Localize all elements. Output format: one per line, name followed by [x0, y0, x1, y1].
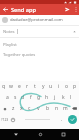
staticText: e: [18, 83, 21, 90]
button[interactable]: f: [27, 92, 35, 103]
staticText: y: [42, 83, 45, 90]
staticText: u: [49, 83, 53, 90]
button[interactable]: c: [25, 103, 34, 114]
button[interactable]: Space: [17, 114, 58, 125]
button[interactable]: p: [71, 81, 79, 92]
staticText: h: [45, 94, 49, 101]
staticText: t: [34, 83, 36, 90]
button[interactable]: Shift: [0, 103, 9, 114]
staticText: c: [28, 105, 31, 112]
button[interactable]: .: [58, 114, 65, 125]
button[interactable]: Enter: [65, 114, 79, 125]
staticText: f: [30, 94, 32, 101]
button[interactable]: m: [61, 103, 70, 114]
button[interactable]: Back: [0, 4, 11, 15]
button[interactable]: Emoji: [9, 114, 17, 125]
button[interactable]: q: [0, 81, 7, 92]
button[interactable]: Send: [62, 4, 72, 15]
staticText: .: [61, 116, 63, 123]
button[interactable]: w: [7, 81, 15, 92]
button[interactable]: Home: [33, 129, 47, 140]
button[interactable]: s: [11, 92, 19, 103]
staticText: m: [63, 105, 68, 112]
staticText: p: [73, 83, 77, 90]
button[interactable]: a: [4, 92, 11, 103]
button[interactable]: More options: [72, 4, 79, 15]
staticText: r: [26, 83, 29, 90]
staticText: Notes: [3, 29, 15, 35]
button[interactable]: t: [31, 81, 39, 92]
button[interactable]: n: [52, 103, 61, 114]
staticText: d: [21, 94, 25, 101]
button[interactable]: dadudoe@protonmail.com: [2, 15, 76, 25]
staticText: k: [62, 94, 65, 101]
button[interactable]: Notes: [3, 26, 76, 37]
staticText: a: [6, 94, 9, 101]
staticText: s: [14, 94, 17, 101]
button[interactable]: j: [51, 92, 59, 103]
button[interactable]: ?123: [0, 114, 9, 125]
staticText: i: [58, 83, 60, 90]
button[interactable]: x: [17, 103, 25, 114]
staticText: n: [55, 105, 59, 112]
staticText: w: [9, 83, 13, 90]
button[interactable]: r: [23, 81, 31, 92]
staticText: v: [37, 105, 40, 112]
button[interactable]: Backspace: [70, 103, 79, 114]
button[interactable]: k: [59, 92, 67, 103]
staticText: q: [2, 83, 6, 90]
staticText: Send app: [11, 6, 36, 14]
button[interactable]: u: [47, 81, 55, 92]
staticText: dadudoe@protonmail.com: [10, 17, 63, 23]
staticText: l: [70, 94, 72, 101]
staticText: b: [46, 105, 50, 112]
button[interactable]: Recents: [56, 129, 70, 140]
button[interactable]: h: [43, 92, 51, 103]
button[interactable]: o: [63, 81, 71, 92]
button[interactable]: i: [55, 81, 63, 92]
staticText: Playlist: [3, 42, 17, 48]
button[interactable]: b: [43, 103, 52, 114]
button[interactable]: v: [34, 103, 43, 114]
staticText: z: [12, 105, 15, 112]
button[interactable]: g: [35, 92, 43, 103]
staticText: j: [54, 94, 56, 101]
button[interactable]: l: [67, 92, 75, 103]
staticText: Together quotes: [3, 52, 36, 58]
button[interactable]: y: [39, 81, 47, 92]
button[interactable]: d: [19, 92, 27, 103]
staticText: o: [65, 83, 69, 90]
button[interactable]: z: [9, 103, 17, 114]
staticText: ?123: [1, 117, 9, 122]
staticText: x: [20, 105, 23, 112]
button[interactable]: Back: [9, 129, 23, 140]
staticText: g: [37, 94, 41, 101]
button[interactable]: e: [15, 81, 23, 92]
